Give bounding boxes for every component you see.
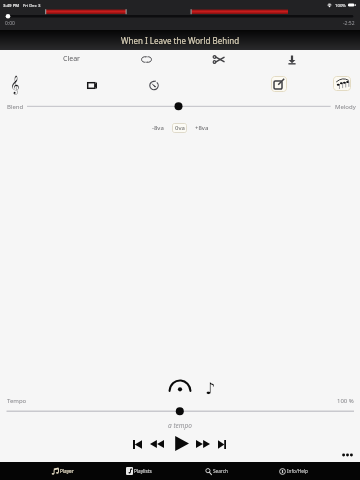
button[interactable]: Skip to start <box>128 435 146 453</box>
button[interactable]: Download <box>279 49 305 69</box>
staticText: 100% <box>335 2 346 8</box>
button[interactable]: Info/Help <box>263 462 323 480</box>
staticText: 0:00 <box>5 20 15 27</box>
staticText: +8va <box>195 124 209 132</box>
button[interactable]: Timer <box>141 75 167 95</box>
button[interactable]: 0va <box>172 123 187 133</box>
staticText: 100 % <box>337 397 354 405</box>
staticText: 𝄞 <box>10 77 20 93</box>
button[interactable]: Edit <box>267 73 291 95</box>
button[interactable]: Clef <box>3 74 27 96</box>
button[interactable]: -8va <box>148 122 168 134</box>
button[interactable]: Rewind <box>148 435 166 453</box>
button[interactable]: Fermata <box>168 378 192 394</box>
button[interactable]: More <box>338 448 356 462</box>
button[interactable]: Playlists <box>109 462 169 480</box>
button[interactable]: Notes <box>330 72 354 94</box>
staticText: ♪ <box>205 379 216 395</box>
button[interactable]: Clear <box>51 49 91 69</box>
staticText: Fri Dec 3 <box>23 2 41 8</box>
staticText: 3:49 PM <box>3 2 20 8</box>
button[interactable]: Video <box>79 75 105 95</box>
button[interactable]: Fast forward <box>194 435 212 453</box>
staticText: When I Leave the World Behind <box>121 35 240 46</box>
button[interactable]: +8va <box>191 122 213 134</box>
staticText: Melody <box>335 103 356 111</box>
button[interactable]: Player <box>33 462 93 480</box>
button[interactable]: Search <box>186 462 246 480</box>
button[interactable]: Skip to end <box>213 435 231 453</box>
staticText: Player <box>60 468 74 474</box>
staticText: -2:52 <box>343 20 355 27</box>
button[interactable]: Play <box>171 433 192 454</box>
staticText: a tempo <box>168 421 192 430</box>
staticText: 0va <box>175 124 185 132</box>
staticText: Playlists <box>134 468 152 474</box>
staticText: Clear <box>63 54 80 64</box>
staticText: Tempo <box>7 397 27 405</box>
button[interactable]: Loop <box>133 49 159 69</box>
staticText: Info/Help <box>287 468 308 474</box>
staticText: -8va <box>152 124 164 132</box>
button[interactable]: Note value <box>203 379 217 395</box>
staticText: Blend <box>7 103 24 111</box>
button[interactable]: Cut <box>205 49 231 69</box>
staticText: Search <box>213 468 228 474</box>
